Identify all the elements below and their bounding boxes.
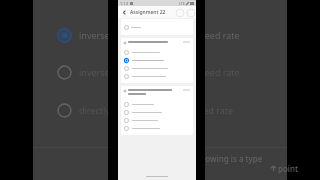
staticText: Which of the following is a type of Lase… [143, 153, 268, 175]
button[interactable] [124, 64, 190, 72]
button[interactable]: More options [174, 7, 185, 18]
staticText: LTE [179, 1, 185, 6]
button[interactable] [121, 19, 193, 35]
button[interactable] [124, 124, 190, 132]
button[interactable] [121, 38, 193, 83]
button[interactable] [124, 108, 190, 116]
button[interactable] [124, 72, 190, 80]
button[interactable]: directly proportional to the feed rate [57, 99, 277, 121]
staticText: inversely proportional to the feed rate [79, 29, 240, 41]
button[interactable]: Account [185, 7, 196, 18]
button[interactable]: Back [118, 6, 130, 18]
button[interactable] [124, 48, 190, 56]
staticText: 1:14 [120, 1, 128, 6]
button[interactable] [124, 116, 190, 124]
button[interactable] [121, 86, 193, 135]
button[interactable] [124, 100, 190, 108]
button[interactable]: inversely proportional to the feed rate [57, 61, 277, 83]
staticText: inversely proportional to the feed rate [79, 66, 240, 78]
staticText: Assignment 22 [130, 9, 166, 16]
button[interactable]: inversely proportional to the feed rate [57, 24, 277, 46]
staticText: point [278, 163, 299, 174]
staticText: surface allowing [143, 178, 206, 180]
staticText: directly proportional to the feed rate [79, 104, 234, 116]
button[interactable] [124, 56, 190, 64]
